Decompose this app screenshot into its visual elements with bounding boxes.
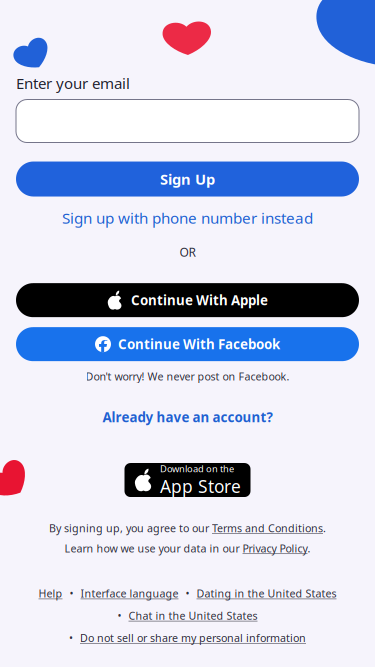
button[interactable]: Chat in the United States: [128, 608, 257, 623]
button[interactable]: Do not sell or share my personal informa…: [80, 631, 306, 645]
button[interactable]: Interface language: [80, 586, 178, 601]
staticText: Learn how we use your data in our Privac…: [64, 541, 310, 555]
button[interactable]: Help: [38, 586, 62, 601]
staticText: App Store: [160, 475, 241, 498]
staticText: Interface language: [80, 586, 178, 601]
staticText: •: [69, 586, 73, 601]
button[interactable]: Download on the App Store: [124, 463, 250, 497]
staticText: Already have an account?: [102, 408, 272, 426]
staticText: Sign up with phone number instead: [62, 207, 313, 228]
button[interactable]: Sign Up: [0, 161, 375, 196]
staticText: Continue With Apple: [131, 291, 268, 309]
button[interactable]: Continue With Facebook: [0, 327, 375, 361]
staticText: •: [69, 631, 73, 645]
staticText: OR: [179, 244, 195, 260]
staticText: Chat in the United States: [128, 608, 257, 623]
staticText: •: [117, 608, 121, 623]
staticText: Don't worry! We never post on Facebook.: [85, 369, 289, 383]
staticText: Dating in the United States: [196, 586, 336, 601]
staticText: Do not sell or share my personal informa…: [80, 631, 306, 645]
button[interactable]: Continue With Apple: [0, 283, 375, 317]
staticText: Help: [38, 586, 62, 601]
button[interactable]: Already have an account?: [90, 402, 284, 432]
staticText: Continue With Facebook: [118, 335, 280, 353]
staticText: Sign Up: [160, 169, 215, 189]
staticText: •: [185, 586, 189, 601]
staticText: By signing up, you agree to our Terms an…: [49, 521, 326, 535]
button[interactable]: Sign up with phone number instead: [50, 202, 325, 233]
staticText: Enter your email: [16, 73, 130, 93]
button[interactable]: Dating in the United States: [196, 586, 336, 601]
staticText: Download on the: [160, 462, 234, 475]
